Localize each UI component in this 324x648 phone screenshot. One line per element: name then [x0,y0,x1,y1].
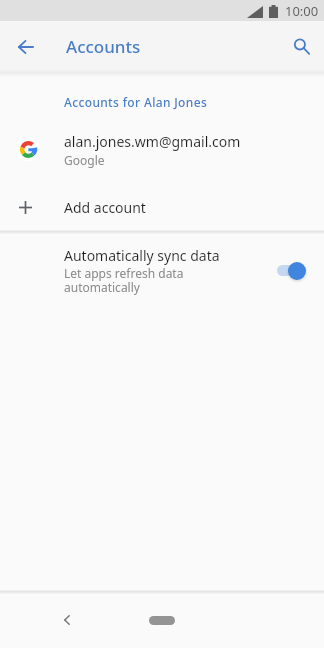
button[interactable]: Automatically sync data [0,232,324,306]
staticText: Accounts [66,35,141,58]
staticText: Automatically sync data [64,246,220,265]
staticText: 10:00 [285,2,319,20]
button[interactable]: Home [143,609,181,631]
button[interactable]: Search [280,25,324,69]
button[interactable]: Back [4,25,48,69]
staticText: alan.jones.wm@gmail.com [64,132,241,151]
button[interactable]: Back [50,601,84,635]
staticText: Add account [64,198,146,217]
button[interactable]: Accounts for Alan Jones [64,94,208,110]
staticText: Let apps refresh data automatically [64,265,184,296]
staticText: Google [64,152,105,168]
button[interactable]: alan.jones.wm@gmail.com [0,124,324,176]
button[interactable]: Add account [0,186,324,230]
staticText: Accounts for Alan Jones [64,94,208,110]
